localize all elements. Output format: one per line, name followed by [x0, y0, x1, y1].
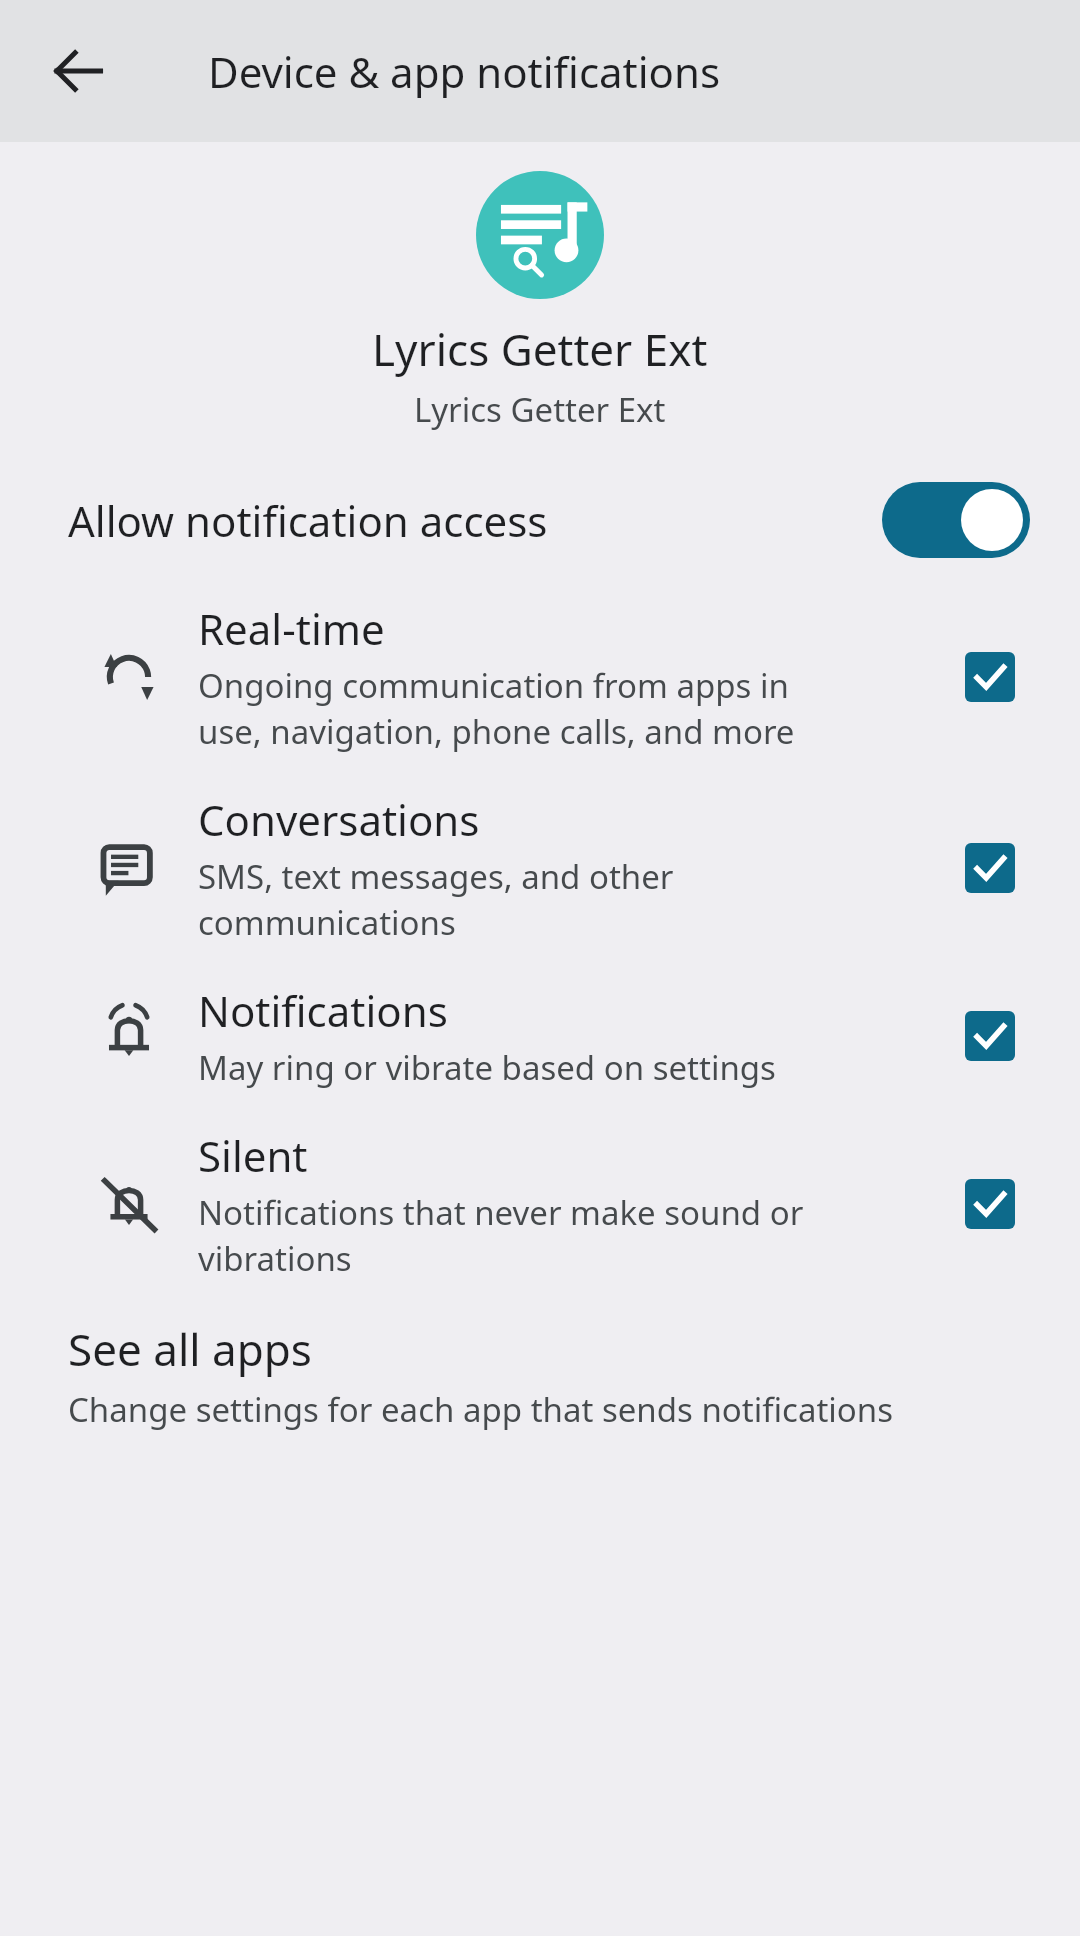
button[interactable]: Silent checkbox	[950, 1164, 1030, 1244]
staticText: Notifications	[198, 982, 448, 1039]
button[interactable]: Notifications checkbox	[950, 996, 1030, 1076]
staticText: Conversations	[198, 791, 480, 848]
button[interactable]: Real-time checkbox	[950, 637, 1030, 717]
staticText: Change settings for each app that sends …	[68, 1387, 894, 1432]
staticText: See all apps	[68, 1319, 312, 1379]
staticText: Notifications that never make sound or v…	[198, 1190, 804, 1281]
button[interactable]: Allow notification access	[0, 465, 1080, 575]
staticText: Real-time	[198, 600, 385, 657]
button[interactable]: Silent	[0, 1127, 1080, 1281]
staticText: Silent	[198, 1127, 308, 1184]
button[interactable]: Conversations checkbox	[950, 828, 1030, 908]
button[interactable]: See all apps	[0, 1319, 1080, 1432]
staticText: Device & app notifications	[208, 43, 721, 100]
staticText: SMS, text messages, and other communicat…	[198, 854, 674, 945]
button[interactable]: Real-time	[0, 600, 1080, 754]
staticText: Ongoing communication from apps in use, …	[198, 663, 795, 754]
button[interactable]: Back	[30, 23, 126, 119]
staticText: Lyrics Getter Ext	[414, 387, 666, 432]
staticText: Allow notification access	[68, 492, 882, 549]
button[interactable]: Conversations	[0, 791, 1080, 945]
staticText: Lyrics Getter Ext	[372, 319, 708, 379]
staticText: May ring or vibrate based on settings	[198, 1045, 776, 1090]
button[interactable]: Notifications	[0, 982, 1080, 1090]
